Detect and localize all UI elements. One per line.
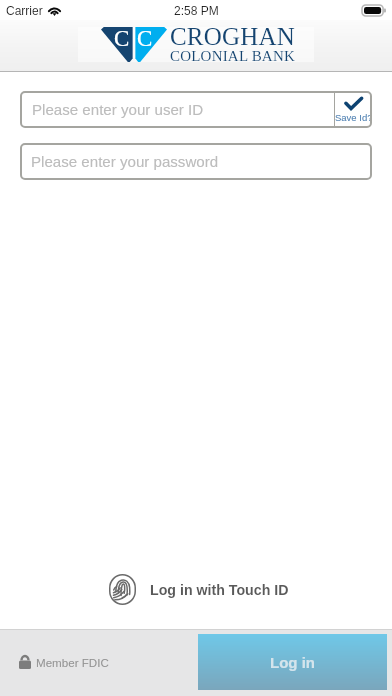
staticText: C	[114, 26, 130, 51]
staticText: Log in	[270, 654, 315, 671]
button[interactable]: Log in	[198, 634, 387, 690]
button[interactable]: Save Id	[335, 91, 372, 128]
staticText: COLONIAL BANK	[170, 48, 295, 65]
button[interactable]: Please enter your password	[20, 143, 372, 180]
staticText: Log in with Touch ID	[150, 582, 289, 598]
button[interactable]: Log in with Touch ID	[105, 572, 293, 607]
staticText: Please enter your user ID	[32, 101, 204, 118]
staticText: CROGHAN	[170, 23, 296, 51]
staticText: Save Id?	[335, 112, 372, 123]
button[interactable]: Member FDIC	[0, 650, 117, 674]
staticText: Please enter your password	[31, 153, 219, 170]
button[interactable]: Please enter your user ID	[20, 91, 334, 128]
staticText: C	[137, 26, 153, 51]
staticText: 2:58 PM	[174, 4, 219, 17]
staticText: Carrier	[6, 4, 43, 17]
staticText: Member FDIC	[36, 656, 109, 669]
